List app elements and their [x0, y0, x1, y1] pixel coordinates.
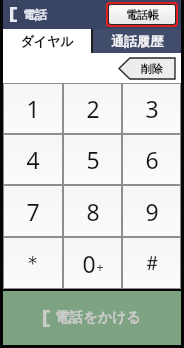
staticText: ダイヤル	[20, 33, 74, 49]
button[interactable]: 9	[123, 186, 180, 236]
button[interactable]: 電話帳	[109, 5, 175, 24]
staticText: 8	[86, 196, 100, 227]
button[interactable]: ＊	[4, 238, 62, 288]
button[interactable]: 0	[64, 238, 121, 288]
staticText: 1	[26, 93, 40, 124]
button[interactable]: 8	[64, 186, 121, 236]
button[interactable]: ＃	[123, 238, 180, 288]
button[interactable]: 6	[123, 135, 180, 184]
staticText: 2	[86, 93, 100, 124]
staticText: 電話をかける	[55, 309, 141, 327]
staticText: 0	[82, 248, 96, 279]
button[interactable]: 5	[64, 135, 121, 184]
staticText: 9	[145, 196, 159, 227]
button[interactable]: ダイヤル	[3, 29, 91, 53]
staticText: +	[96, 258, 104, 276]
staticText: 4	[26, 144, 40, 175]
staticText: 電話	[23, 7, 47, 22]
staticText: 電話帳	[126, 8, 159, 22]
button[interactable]: 削除	[119, 58, 175, 79]
button[interactable]: 2	[64, 84, 121, 133]
staticText: 6	[145, 144, 159, 175]
staticText: 通話履歴	[111, 33, 163, 49]
staticText: ＃	[142, 251, 162, 276]
button[interactable]: 通話履歴	[93, 29, 181, 53]
button[interactable]: 3	[123, 84, 180, 133]
button[interactable]: 1	[4, 84, 62, 133]
staticText: 5	[86, 144, 100, 175]
staticText: 削除	[141, 62, 163, 76]
staticText: 3	[145, 93, 159, 124]
button[interactable]: 7	[4, 186, 62, 236]
staticText: ＊	[23, 251, 43, 276]
button[interactable]: 4	[4, 135, 62, 184]
button[interactable]: 電話をかける	[3, 291, 181, 345]
staticText: 7	[26, 196, 40, 227]
